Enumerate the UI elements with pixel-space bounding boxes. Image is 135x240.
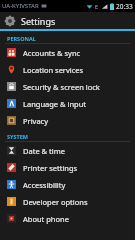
button[interactable]: Developer options (0, 193, 135, 210)
button[interactable]: Location services (0, 61, 135, 78)
staticText: Date & time (23, 146, 65, 156)
staticText: Privacy (23, 116, 49, 126)
staticText: Accessibility (23, 180, 66, 190)
staticText: Accounts & sync (23, 48, 81, 58)
staticText: Developer options (23, 197, 88, 207)
staticText: UA-KYIVSTAR (2, 2, 39, 10)
staticText: Language & input (23, 99, 86, 109)
button[interactable]: Accounts & sync (0, 44, 135, 61)
button[interactable]: Printer settings (0, 159, 135, 176)
staticText: 20:33 (116, 2, 133, 11)
button[interactable]: About phone (0, 210, 135, 227)
staticText: Printer settings (23, 163, 78, 173)
staticText: E (95, 3, 99, 10)
staticText: SYSTEM (7, 133, 28, 140)
button[interactable]: Date & time (0, 142, 135, 159)
button[interactable]: Accessibility (0, 176, 135, 193)
staticText: Settings (21, 15, 56, 27)
button[interactable]: Security & screen lock (0, 78, 135, 95)
button[interactable]: Settings (0, 12, 135, 29)
button[interactable]: Privacy (0, 112, 135, 129)
staticText: Security & screen lock (23, 82, 100, 92)
staticText: Location services (23, 65, 84, 75)
button[interactable]: Language & input (0, 95, 135, 112)
staticText: About phone (23, 214, 69, 224)
staticText: PERSONAL (7, 35, 36, 42)
